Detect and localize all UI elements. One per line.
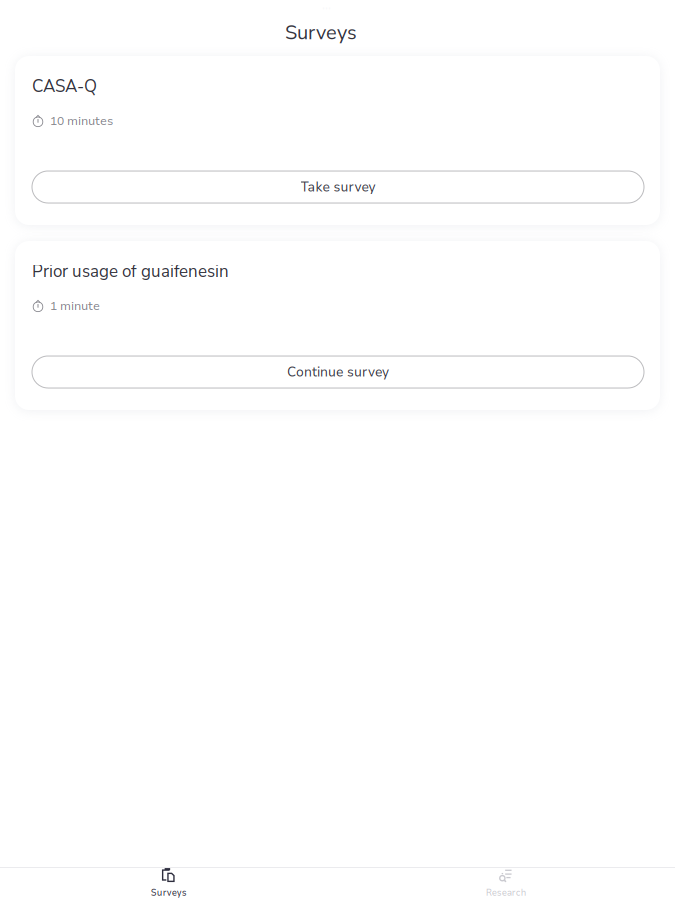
staticText: Continue survey — [287, 363, 389, 381]
staticText: Take survey — [300, 178, 375, 196]
staticText: Surveys — [151, 887, 187, 899]
staticText: Research — [486, 887, 527, 899]
staticText: 10 minutes — [50, 113, 113, 129]
staticText: Surveys — [285, 19, 357, 46]
staticText: CASA-Q — [32, 75, 97, 98]
button[interactable]: Continue survey — [32, 356, 644, 388]
staticText: Prior usage of guaifenesin — [32, 260, 229, 283]
button[interactable]: Surveys — [0, 862, 337, 900]
button[interactable]: Research — [337, 862, 675, 900]
button[interactable]: Take survey — [32, 171, 644, 203]
staticText: 1 minute — [50, 298, 100, 314]
